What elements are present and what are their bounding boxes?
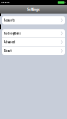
button[interactable]: About — [2, 47, 65, 55]
staticText: Advanced — [4, 40, 16, 44]
staticText: Settings — [27, 7, 40, 11]
staticText: Audio options — [4, 31, 21, 35]
button[interactable]: Advanced — [2, 38, 65, 46]
staticText: Accounts — [4, 18, 15, 22]
staticText: About — [4, 49, 12, 53]
button[interactable]: Audio options — [2, 29, 65, 37]
button[interactable]: Accounts — [2, 16, 65, 24]
